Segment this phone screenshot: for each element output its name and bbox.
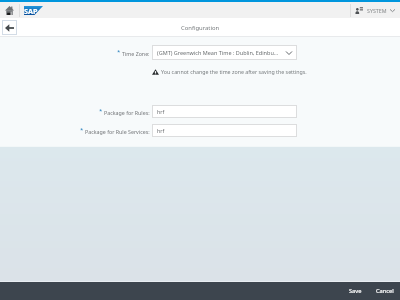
staticText: hrf — [157, 108, 165, 115]
button[interactable]: Cancel — [369, 282, 400, 300]
staticText: * — [80, 126, 84, 134]
button[interactable]: Home — [0, 2, 19, 18]
staticText: You cannot change the time zone after sa… — [161, 68, 307, 75]
staticText: Cancel — [376, 287, 394, 295]
staticText: Package for Rules: — [104, 109, 150, 116]
staticText: Package for Rule Services: — [85, 128, 150, 135]
staticText: SAP — [24, 6, 38, 15]
staticText: * — [117, 48, 121, 56]
button[interactable]: hrf — [152, 124, 297, 137]
button[interactable]: Save — [342, 282, 369, 300]
button[interactable]: Back — [2, 20, 17, 35]
button[interactable]: (GMT) Greenwich Mean Time : Dublin, Edin… — [152, 45, 297, 60]
button[interactable]: SYSTEM — [351, 2, 400, 18]
button[interactable]: hrf — [152, 105, 297, 118]
staticText: hrf — [157, 127, 165, 134]
staticText: SYSTEM — [367, 7, 387, 14]
staticText: Save — [349, 287, 362, 295]
staticText: Time Zone: — [122, 50, 150, 57]
staticText: * — [99, 107, 103, 115]
staticText: (GMT) Greenwich Mean Time : Dublin, Edin… — [157, 49, 280, 56]
staticText: Configuration — [181, 24, 220, 32]
